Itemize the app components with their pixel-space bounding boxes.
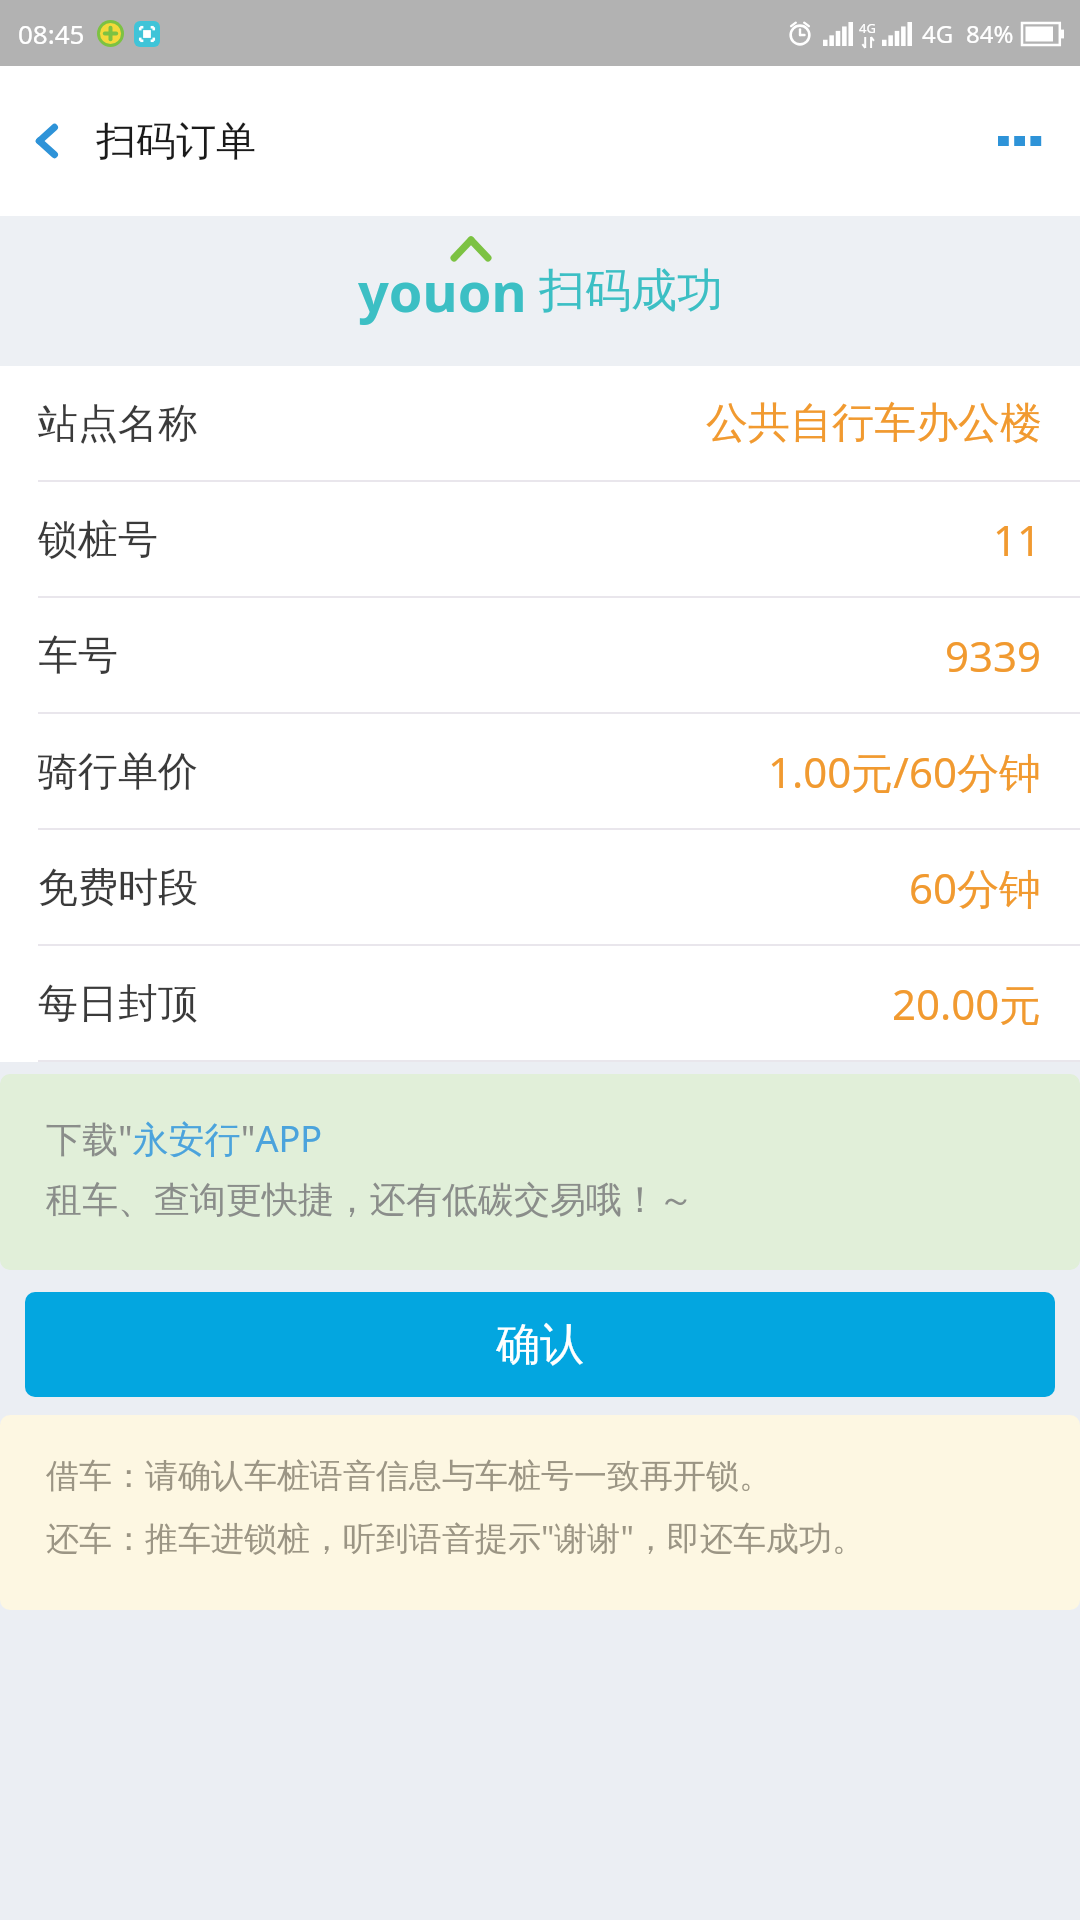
staticText: 扫码订单 [96,116,256,166]
staticText: 锁桩号 [38,514,158,564]
staticText: 84% [966,17,1014,50]
staticText: 免费时段 [38,862,198,912]
button[interactable]: 每日封顶 [0,946,1080,1060]
staticText: 扫码成功 [539,262,723,320]
staticText: 公共自行车办公楼 [706,397,1042,450]
staticText: 08:45 [18,16,85,51]
staticText: 站点名称 [38,398,198,448]
staticText: 租车、查询更快捷，还有低碳交易哦！～ [46,1177,694,1222]
button[interactable]: 确认 [25,1292,1055,1397]
button[interactable]: 骑行单价 [0,714,1080,828]
staticText: 9339 [945,627,1042,684]
staticText: 20.00元 [892,975,1042,1032]
staticText: 骑行单价 [38,746,198,796]
button[interactable]: 站点名称 [0,366,1080,480]
button[interactable]: More options [970,86,1080,196]
staticText: 11 [993,511,1042,568]
staticText: 车号 [38,630,118,680]
staticText: 下载"永安行"APP [46,1114,322,1163]
staticText: 确认 [496,1317,584,1372]
button[interactable]: 车号 [0,598,1080,712]
staticText: 借车：请确认车桩语音信息与车桩号一致再开锁。 [46,1455,772,1497]
staticText: youon [358,254,527,328]
staticText: 60分钟 [909,859,1042,916]
staticText: 每日封顶 [38,978,198,1028]
staticText: 还车：推车进锁桩，听到语音提示"谢谢"，即还车成功。 [46,1515,865,1560]
button[interactable]: 免费时段 [0,830,1080,944]
staticText: 4G [922,17,954,50]
button[interactable]: Back [0,93,96,189]
staticText: 1.00元/60分钟 [768,743,1042,800]
button[interactable]: 锁桩号 [0,482,1080,596]
staticText: 4G [859,19,876,37]
button[interactable]: 下载"永安行"APP [0,1074,1080,1270]
